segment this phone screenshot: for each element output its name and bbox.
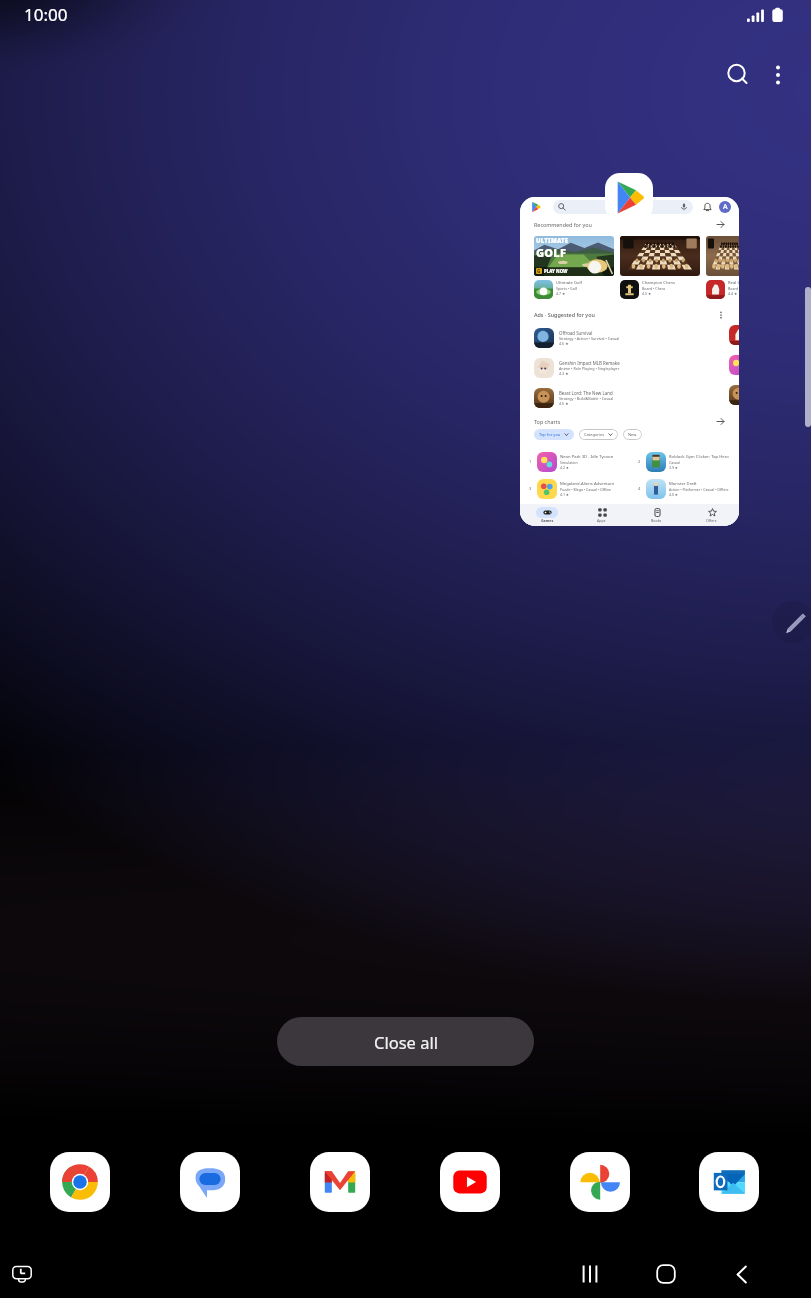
button[interactable]: Gmail xyxy=(310,1152,370,1212)
staticText: 4.3 ★ xyxy=(559,371,569,376)
staticText: ULTIMATE xyxy=(536,237,569,245)
staticText: Board • Chess xyxy=(728,286,739,291)
staticText: Ads · Suggested for you xyxy=(534,311,595,318)
button[interactable]: Google Play xyxy=(605,173,653,221)
staticText: Puzzle • Mega • Casual • Offline xyxy=(560,487,612,492)
staticText: Beast Lord: The New Land xyxy=(559,390,613,396)
staticText: Close all xyxy=(374,1031,438,1053)
button[interactable]: Edit xyxy=(772,601,811,643)
staticText: Sports • Golf xyxy=(556,286,578,291)
staticText: New xyxy=(628,432,637,437)
staticText: Action • Platformer • Casual • Offline xyxy=(669,487,729,492)
staticText: 1 xyxy=(529,459,532,464)
button[interactable]: Notifications xyxy=(702,202,712,212)
staticText: 4.6 ★ xyxy=(559,341,569,346)
button[interactable]: Beast Lord: The New Land xyxy=(534,383,725,413)
staticText: Monster Draft xyxy=(669,481,697,487)
staticText: 10:00 xyxy=(24,3,68,26)
button[interactable]: A xyxy=(719,201,731,213)
button[interactable]: New xyxy=(623,429,642,440)
staticText: 4 xyxy=(638,486,641,491)
staticText: Real Chess 3D xyxy=(728,280,739,286)
button[interactable]: Messages xyxy=(180,1152,240,1212)
button[interactable]: Top for you xyxy=(534,429,574,440)
button[interactable] xyxy=(706,236,739,276)
staticText: Anime • Role Playing • Singleplayer xyxy=(559,366,620,371)
staticText: G xyxy=(537,268,541,274)
button[interactable]: 2 xyxy=(638,448,739,475)
button[interactable]: Recents xyxy=(568,1252,612,1296)
button[interactable]: Back xyxy=(720,1252,764,1296)
button[interactable]: Notifications xyxy=(520,197,739,526)
button[interactable]: YouTube xyxy=(440,1152,500,1212)
staticText: Apps xyxy=(597,518,606,523)
staticText: 3 xyxy=(529,486,532,491)
staticText: Top charts xyxy=(534,418,561,425)
button[interactable] xyxy=(553,200,693,214)
button[interactable]: Categories xyxy=(579,429,618,440)
button[interactable]: 1 xyxy=(529,448,629,475)
button[interactable]: Real Chess 3D xyxy=(706,280,739,304)
staticText: Casual xyxy=(669,460,680,465)
button[interactable]: DeX xyxy=(2,1254,42,1294)
button[interactable]: Home xyxy=(644,1252,688,1296)
button[interactable]: More options xyxy=(756,53,800,97)
staticText: 4.5 ★ xyxy=(642,291,652,296)
staticText: 4.2 ★ xyxy=(560,465,569,470)
staticText: 2 xyxy=(638,459,641,464)
staticText: Champion Chess xyxy=(642,280,675,286)
button[interactable]: 4 xyxy=(638,475,739,502)
staticText: Books xyxy=(651,518,662,523)
staticText: Recommended for you xyxy=(534,221,592,228)
staticText: Offroad Survival xyxy=(559,330,593,336)
button[interactable]: Books xyxy=(629,504,684,526)
button[interactable]: Champion Chess xyxy=(620,280,700,304)
button[interactable]: Offroad Survival xyxy=(534,323,725,353)
staticText: Games xyxy=(541,518,554,523)
button[interactable]: 3 xyxy=(529,475,629,502)
staticText: Megaland-Aliens Adventure xyxy=(560,481,615,487)
staticText: Simulation xyxy=(560,460,578,465)
staticText: Genshin Impact MLB Remake xyxy=(559,360,620,366)
staticText: 4.1 ★ xyxy=(560,492,569,497)
button[interactable]: Chrome xyxy=(50,1152,110,1212)
staticText: A xyxy=(723,202,728,212)
staticText: Board • Chess xyxy=(642,286,666,291)
staticText: Strategy • Action • Survival • Casual xyxy=(559,336,620,341)
staticText: 4.5 ★ xyxy=(559,401,569,406)
button[interactable]: Games xyxy=(520,504,574,526)
button[interactable]: Photos xyxy=(570,1152,630,1212)
staticText: Roblock Gym Clicker: Tap Hero xyxy=(669,454,729,460)
staticText: PLAY NOW xyxy=(544,268,568,274)
staticText: Strategy • Build&Battle • Casual xyxy=(559,396,614,401)
staticText: Categories xyxy=(584,432,605,437)
button[interactable]: Outlook xyxy=(699,1152,759,1212)
button[interactable]: Genshin Impact MLB Remake xyxy=(534,353,725,383)
button[interactable]: Search xyxy=(714,51,762,99)
button[interactable]: ULTIMATE xyxy=(534,236,614,276)
button[interactable]: Close all xyxy=(277,1017,534,1066)
button[interactable]: Offers xyxy=(684,504,739,526)
staticText: 4.7 ★ xyxy=(556,291,566,296)
staticText: Top for you xyxy=(539,432,561,437)
button[interactable]: Ultimate Golf xyxy=(534,280,614,304)
staticText: Ultimate Golf xyxy=(556,280,583,286)
button[interactable]: Apps xyxy=(574,504,629,526)
staticText: 4.0 ★ xyxy=(669,492,678,497)
staticText: Neon Park 3D - Idle Tycoon xyxy=(560,454,614,460)
button[interactable] xyxy=(620,236,700,276)
staticText: 4.4 ★ xyxy=(728,291,738,296)
staticText: Offers xyxy=(706,518,717,523)
staticText: GOLF xyxy=(536,245,567,260)
staticText: 3.9 ★ xyxy=(669,465,678,470)
